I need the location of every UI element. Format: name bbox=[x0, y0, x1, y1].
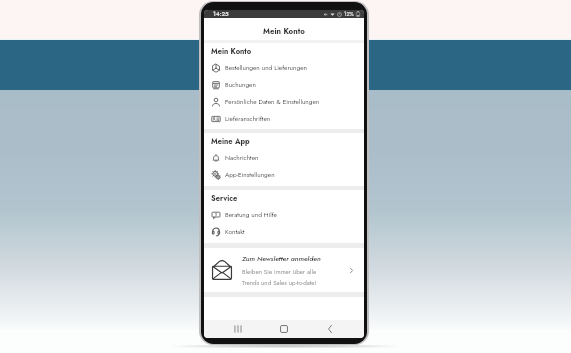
button[interactable]: Buchungen bbox=[204, 76, 364, 93]
staticText: 12% bbox=[344, 10, 354, 18]
staticText: Mein Konto bbox=[211, 46, 252, 57]
button[interactable]: Home bbox=[277, 322, 291, 336]
button[interactable]: Kontakt bbox=[204, 223, 364, 240]
staticText: Meine App bbox=[211, 136, 250, 147]
staticText: Persönliche Daten & Einstellungen bbox=[225, 97, 320, 106]
staticText: Nachrichten bbox=[225, 153, 259, 162]
staticText: App-Einstellungen bbox=[225, 170, 275, 179]
button[interactable]: Bestellungen und Lieferungen bbox=[204, 59, 364, 76]
button[interactable]: Persönliche Daten & Einstellungen bbox=[204, 93, 364, 110]
staticText: Bleiben Sie immer über alle bbox=[242, 267, 317, 276]
button[interactable]: Lieferanschriften bbox=[204, 110, 364, 127]
staticText: Service bbox=[211, 193, 238, 204]
staticText: Mein Konto bbox=[263, 26, 305, 37]
button[interactable]: Zum Newsletter anmelden bbox=[204, 248, 364, 292]
staticText: Beratung und Hilfe bbox=[225, 210, 277, 219]
button[interactable]: Recent apps bbox=[231, 322, 245, 336]
button[interactable]: Nachrichten bbox=[204, 149, 364, 166]
staticText: 14:25 bbox=[213, 10, 229, 18]
staticText: Trends und Sales up-to-date! bbox=[242, 278, 317, 287]
staticText: Zum Newsletter anmelden bbox=[242, 254, 321, 264]
other: Open bbox=[348, 267, 355, 274]
button[interactable]: App-Einstellungen bbox=[204, 166, 364, 183]
staticText: Buchungen bbox=[225, 80, 256, 89]
button[interactable]: Beratung und Hilfe bbox=[204, 206, 364, 223]
button[interactable]: Back bbox=[323, 322, 337, 336]
staticText: Bestellungen und Lieferungen bbox=[225, 63, 307, 72]
staticText: Lieferanschriften bbox=[225, 114, 271, 123]
staticText: Kontakt bbox=[225, 227, 245, 236]
